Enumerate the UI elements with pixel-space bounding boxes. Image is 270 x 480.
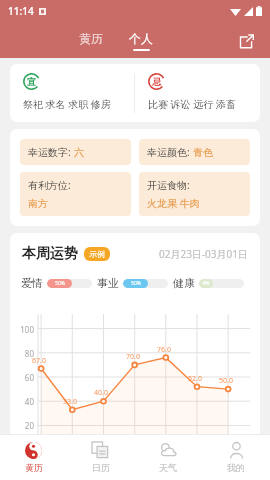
staticText: 本周运势 <box>22 245 78 263</box>
staticText: 幸运数字: <box>28 145 74 159</box>
staticText: 有利方位: <box>28 178 71 192</box>
staticText: 祭祀 求名 求职 修房 <box>23 97 111 111</box>
staticText: 幸运颜色: <box>147 145 193 159</box>
staticText: 40 <box>12 396 34 407</box>
staticText: 50.0 <box>219 376 233 386</box>
button[interactable]: 事业 <box>97 276 173 290</box>
staticText: 比赛 诉讼 远行 添畜 <box>148 97 236 111</box>
staticText: 20 <box>12 420 34 431</box>
staticText: 青色 <box>193 146 213 159</box>
staticText: 健康 <box>173 276 195 290</box>
staticText: 宜 <box>27 76 36 87</box>
staticText: 60 <box>12 372 34 383</box>
staticText: 南方 <box>28 197 48 210</box>
staticText: 黄历 <box>25 462 43 473</box>
button[interactable]: 幸运颜色: <box>139 139 250 165</box>
staticText: 开运食物: <box>147 178 190 192</box>
staticText: 火龙果 牛肉 <box>147 196 200 210</box>
staticText: 02月23日-03月01日 <box>159 247 248 261</box>
staticText: 100 <box>12 324 34 335</box>
button[interactable]: 个人 <box>124 29 158 53</box>
staticText: 个人 <box>129 31 153 46</box>
staticText: 黄历 <box>79 31 103 46</box>
button[interactable]: 黄历 <box>74 29 108 53</box>
staticText: 76.0 <box>157 345 171 355</box>
staticText: 示例 <box>89 249 105 259</box>
staticText: 我的 <box>227 462 245 473</box>
staticText: 33.0 <box>63 397 77 407</box>
staticText: 70.0 <box>126 352 140 362</box>
button[interactable]: 宜 <box>10 64 260 122</box>
button[interactable]: 幸运数字: <box>20 139 131 165</box>
staticText: 六 <box>74 146 84 159</box>
button[interactable]: 日历 <box>67 435 134 480</box>
button[interactable]: 开运食物: <box>139 172 250 216</box>
staticText: 40.0 <box>94 388 108 398</box>
button[interactable]: 天气 <box>134 435 202 480</box>
button[interactable]: Share <box>233 28 259 54</box>
button[interactable]: 有利方位: <box>20 172 131 216</box>
staticText: 50% <box>131 280 141 287</box>
staticText: 日历 <box>92 462 110 473</box>
button[interactable]: 健康 <box>173 276 249 290</box>
staticText: 事业 <box>97 276 119 290</box>
staticText: 爱情 <box>21 276 43 290</box>
staticText: 50% <box>55 280 65 287</box>
staticText: 67.0 <box>32 356 46 366</box>
staticText: 天气 <box>159 462 177 473</box>
staticText: 52.0 <box>188 374 202 384</box>
staticText: 4% <box>202 280 210 287</box>
button[interactable]: 我的 <box>202 435 270 480</box>
staticText: 忌 <box>152 76 161 87</box>
button[interactable]: 黄历 <box>0 435 67 480</box>
staticText: 11:14 <box>8 4 34 18</box>
button[interactable]: 爱情 <box>21 276 97 290</box>
staticText: 80 <box>12 348 34 359</box>
